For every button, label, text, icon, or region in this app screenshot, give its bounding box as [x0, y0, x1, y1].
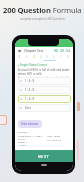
button[interactable]: 1 : 4 : 8 [18, 95, 71, 103]
staticText: 1 : 4 : 8 [25, 97, 35, 101]
staticText: Line - Mass [47, 134, 61, 137]
staticText: 1 : 4 : 8 [25, 88, 35, 92]
button[interactable]: 3 [32, 54, 36, 59]
staticText: 200 Question [3, 5, 51, 15]
staticText: 7 [60, 55, 62, 59]
staticText: Power = [18, 140, 28, 143]
button[interactable]: Hide solution [18, 120, 42, 128]
staticText: Single Choice Correct [20, 63, 47, 67]
button[interactable]: 1 : 4 : 8 [18, 77, 71, 85]
staticText: 5 [46, 55, 48, 59]
staticText: Chapter Test [24, 49, 44, 53]
staticText: Solution [18, 130, 28, 133]
staticText: Formula [51, 5, 82, 15]
staticText: A vessel of 80 lt is full of milk and wa… [18, 68, 71, 84]
staticText: 8 [67, 55, 69, 59]
staticText: 6 [53, 55, 55, 59]
staticText: 18 = 20 x 18 [47, 138, 61, 141]
button[interactable]: 1 : 4 : 8 [18, 86, 71, 94]
button[interactable]: Zero [18, 104, 71, 112]
staticText: 3 [33, 55, 35, 59]
staticText: 00 : 29 : 54 [54, 49, 70, 53]
staticText: Hide solution [21, 122, 39, 126]
staticText: NEXT [38, 154, 50, 159]
button[interactable]: 5 [45, 54, 49, 59]
button[interactable]: 2 [25, 54, 29, 59]
button[interactable]: 6 [52, 54, 56, 59]
button[interactable]: NEXT [15, 150, 73, 162]
staticText: Zero [25, 106, 31, 110]
staticText: W x h [18, 137, 25, 140]
staticText: 1 [19, 55, 21, 59]
button[interactable]: 7 [59, 54, 63, 59]
staticText: complete a chapter in 200 Questions [20, 17, 65, 21]
button[interactable]: 8 [66, 54, 70, 59]
button[interactable]: 4 [39, 54, 43, 59]
staticText: Work done = 1 ring/1 [18, 134, 43, 137]
staticText: 2 [26, 55, 28, 59]
staticText: 4 [40, 55, 42, 59]
staticText: = Time [18, 143, 26, 146]
other: Back [18, 49, 22, 53]
button[interactable]: 1 [18, 54, 22, 59]
staticText: 1 : 4 : 8 [25, 79, 35, 83]
